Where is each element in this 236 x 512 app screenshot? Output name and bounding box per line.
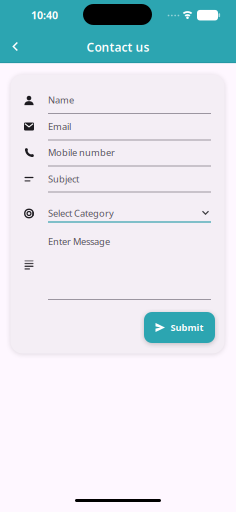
staticText: 10:40	[31, 8, 58, 22]
staticText: Name	[48, 94, 74, 106]
button[interactable]: Mobile number	[48, 141, 211, 166]
staticText: Mobile number	[48, 146, 115, 159]
staticText: Subject	[48, 173, 79, 185]
button[interactable]: Submit	[144, 312, 215, 343]
button[interactable]: Name	[48, 89, 211, 114]
button[interactable]	[4, 34, 28, 58]
staticText: Email	[48, 120, 71, 133]
button[interactable]: Subject	[48, 168, 211, 192]
staticText: Submit	[170, 321, 203, 334]
staticText: Enter Message	[48, 235, 110, 248]
staticText: Select Category	[48, 207, 114, 219]
staticText: Contact us	[86, 39, 149, 55]
button[interactable]: Email	[48, 115, 211, 140]
button[interactable]: Enter Message	[48, 233, 211, 300]
button[interactable]: Select Category	[48, 204, 211, 223]
